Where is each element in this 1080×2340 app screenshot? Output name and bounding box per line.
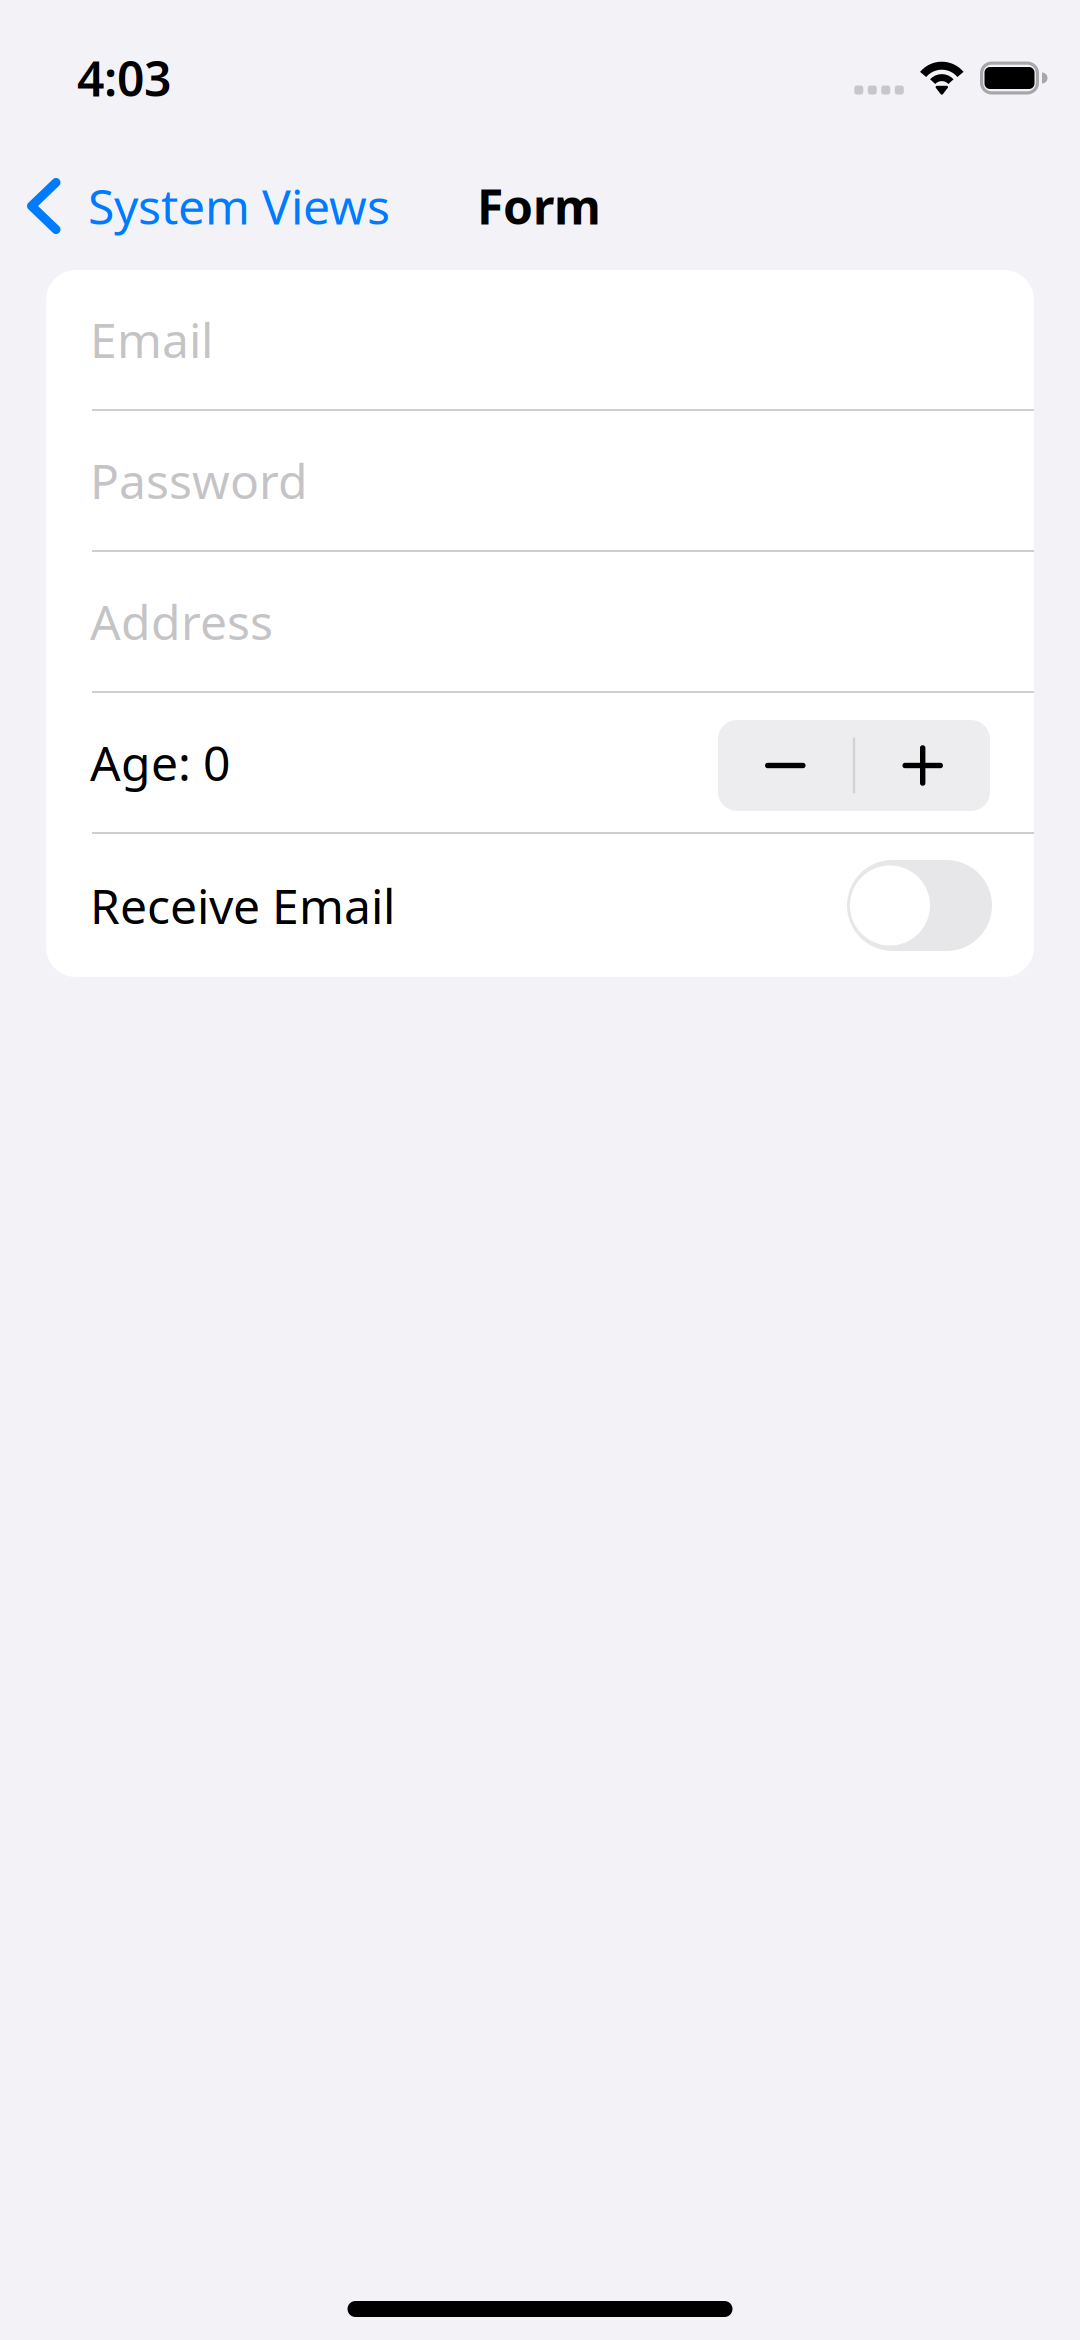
button[interactable]: Password bbox=[46, 411, 1034, 550]
staticText: Email bbox=[90, 308, 213, 371]
button[interactable]: Address bbox=[46, 552, 1034, 691]
button[interactable]: Decrease age bbox=[718, 720, 853, 811]
button[interactable]: Receive Email bbox=[847, 860, 992, 951]
staticText: 4:03 bbox=[77, 46, 171, 110]
staticText: Receive Email bbox=[90, 874, 395, 937]
staticText: Password bbox=[90, 449, 308, 512]
staticText: Age: 0 bbox=[90, 731, 230, 794]
staticText: System Views bbox=[88, 174, 390, 238]
button[interactable]: Back to System Views bbox=[0, 176, 406, 236]
button[interactable]: Increase age bbox=[855, 720, 990, 811]
staticText: Address bbox=[90, 590, 273, 653]
button[interactable]: Email bbox=[46, 270, 1034, 409]
staticText: Form bbox=[477, 174, 601, 238]
